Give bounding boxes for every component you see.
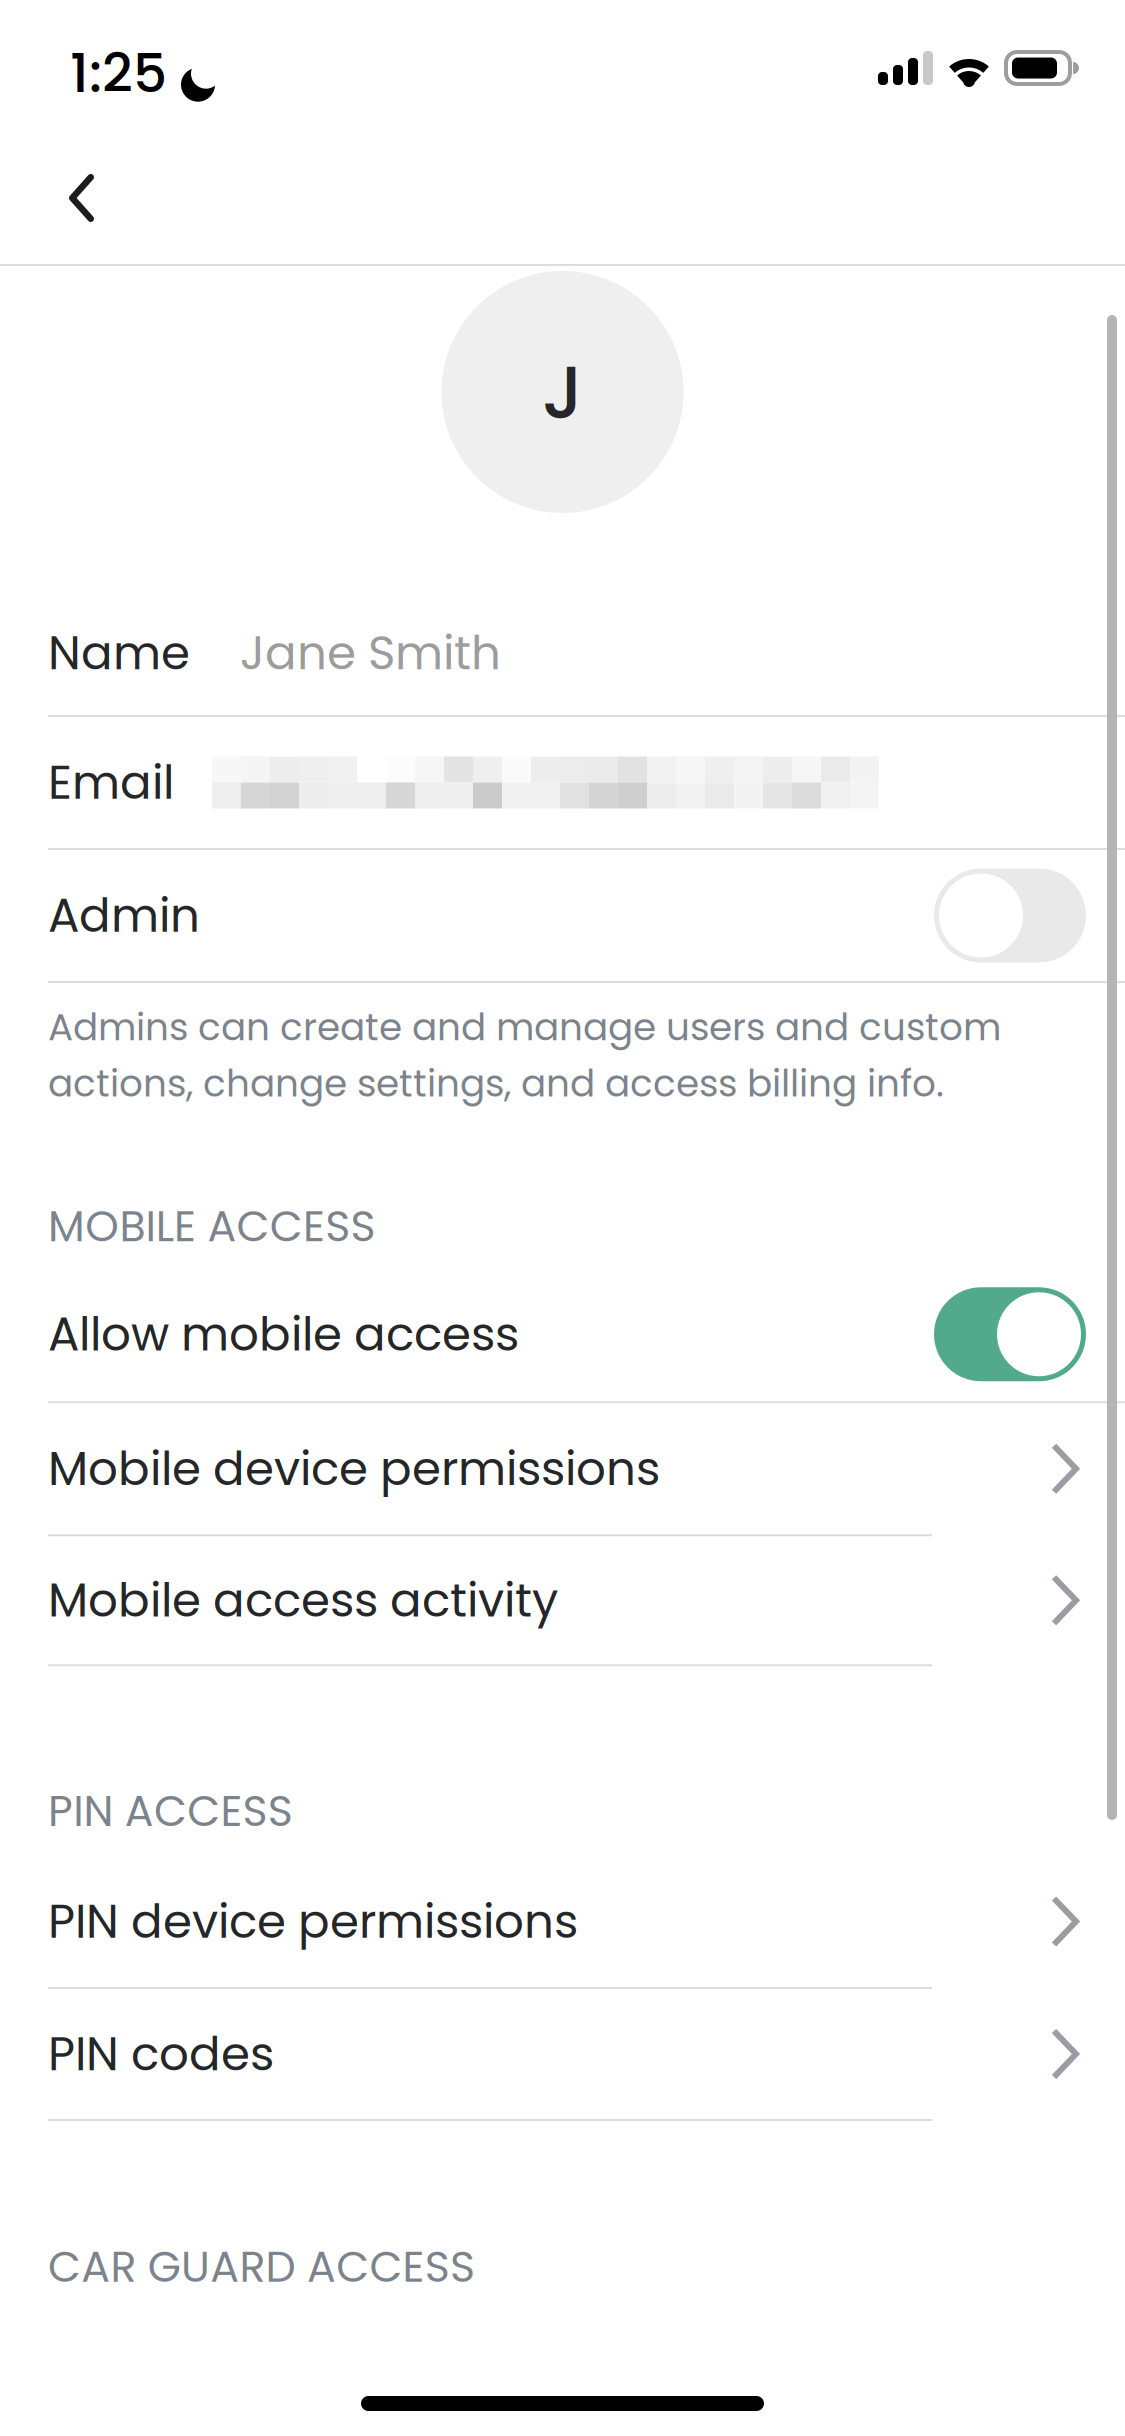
staticText: CAR GUARD ACCESS — [48, 2237, 475, 2297]
staticText: PIN ACCESS — [48, 1781, 293, 1841]
button[interactable]: Allow mobile access — [0, 1267, 1125, 1401]
staticText: J — [542, 341, 583, 443]
button[interactable]: Mobile device permissions — [0, 1403, 1125, 1534]
staticText: Mobile device permissions — [48, 1436, 660, 1501]
staticText: Name — [48, 620, 190, 686]
staticText: Mobile access activity — [48, 1568, 558, 1633]
staticText: PIN codes — [48, 2021, 274, 2087]
staticText: PIN device permissions — [48, 1889, 578, 1954]
button[interactable]: Mobile access activity — [0, 1536, 1125, 1664]
staticText: Jane Smith — [240, 620, 501, 686]
staticText: Admins can create and manage users and c… — [48, 1001, 1001, 1109]
staticText: Admin — [48, 883, 200, 948]
button[interactable]: Admin — [0, 850, 1125, 981]
staticText: Email — [48, 750, 174, 815]
button[interactable]: PIN codes — [0, 1989, 1125, 2119]
staticText: MOBILE ACCESS — [48, 1196, 375, 1256]
button[interactable]: PIN device permissions — [0, 1856, 1125, 1987]
staticText: 1:25 — [70, 36, 167, 111]
button[interactable]: Back — [0, 132, 94, 222]
staticText: Allow mobile access — [48, 1302, 519, 1367]
